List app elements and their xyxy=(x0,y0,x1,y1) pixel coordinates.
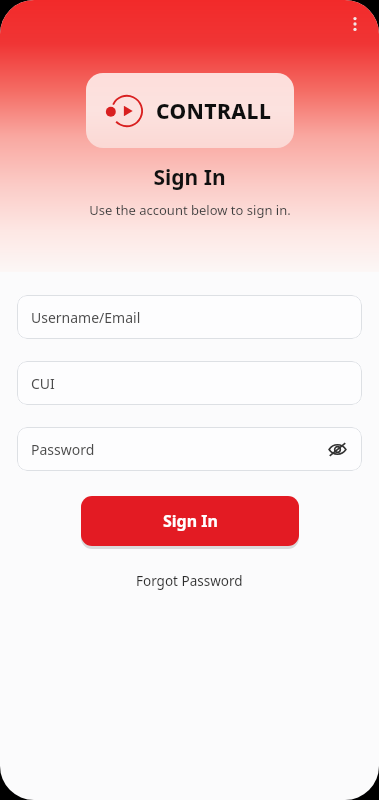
button[interactable]: CUI xyxy=(17,361,362,405)
staticText: Use the account below to sign in. xyxy=(89,201,291,219)
staticText: Password xyxy=(31,440,324,459)
button[interactable]: More options xyxy=(339,8,371,40)
button[interactable]: Forgot Password xyxy=(128,568,251,594)
staticText: Username/Email xyxy=(31,308,350,327)
button[interactable]: Sign In xyxy=(81,496,299,546)
staticText: Forgot Password xyxy=(136,572,243,590)
button[interactable]: Show password xyxy=(324,436,350,462)
staticText: Sign In xyxy=(153,163,226,192)
button[interactable]: Password xyxy=(17,427,362,471)
button[interactable]: Username/Email xyxy=(17,295,362,339)
staticText: CUI xyxy=(31,374,350,393)
staticText: CONTRALL xyxy=(156,97,272,126)
staticText: Sign In xyxy=(163,510,218,532)
